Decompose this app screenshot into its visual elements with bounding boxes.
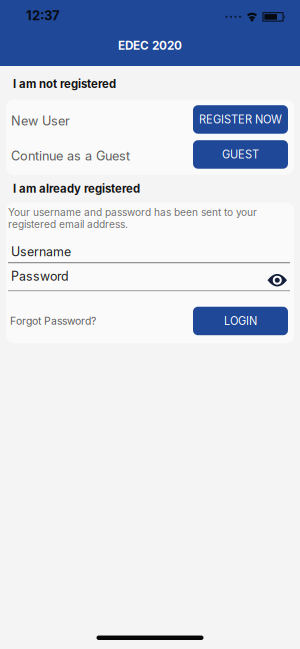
button[interactable]: Forgot Password? <box>8 315 96 327</box>
staticText: REGISTER NOW <box>199 113 282 126</box>
staticText: New User <box>11 113 70 129</box>
staticText: I am already registered <box>13 182 140 195</box>
staticText: I am not registered <box>13 77 116 91</box>
staticText: Your username and password has been sent… <box>8 206 257 230</box>
button[interactable]: LOGIN <box>193 307 288 335</box>
staticText: Forgot Password? <box>10 315 96 327</box>
staticText: Password <box>11 269 69 284</box>
textField[interactable]: Username <box>8 244 294 263</box>
button[interactable]: Show password <box>267 270 294 282</box>
button[interactable]: GUEST <box>193 140 288 169</box>
staticText: EDEC 2020 <box>118 38 182 53</box>
staticText: Username <box>11 244 71 259</box>
button[interactable]: REGISTER NOW <box>193 105 288 134</box>
secureTextField[interactable]: Password <box>8 269 294 291</box>
staticText: GUEST <box>222 148 259 161</box>
staticText: 12:37 <box>26 8 60 23</box>
staticText: LOGIN <box>224 314 257 328</box>
staticText: Continue as a Guest <box>11 148 130 164</box>
